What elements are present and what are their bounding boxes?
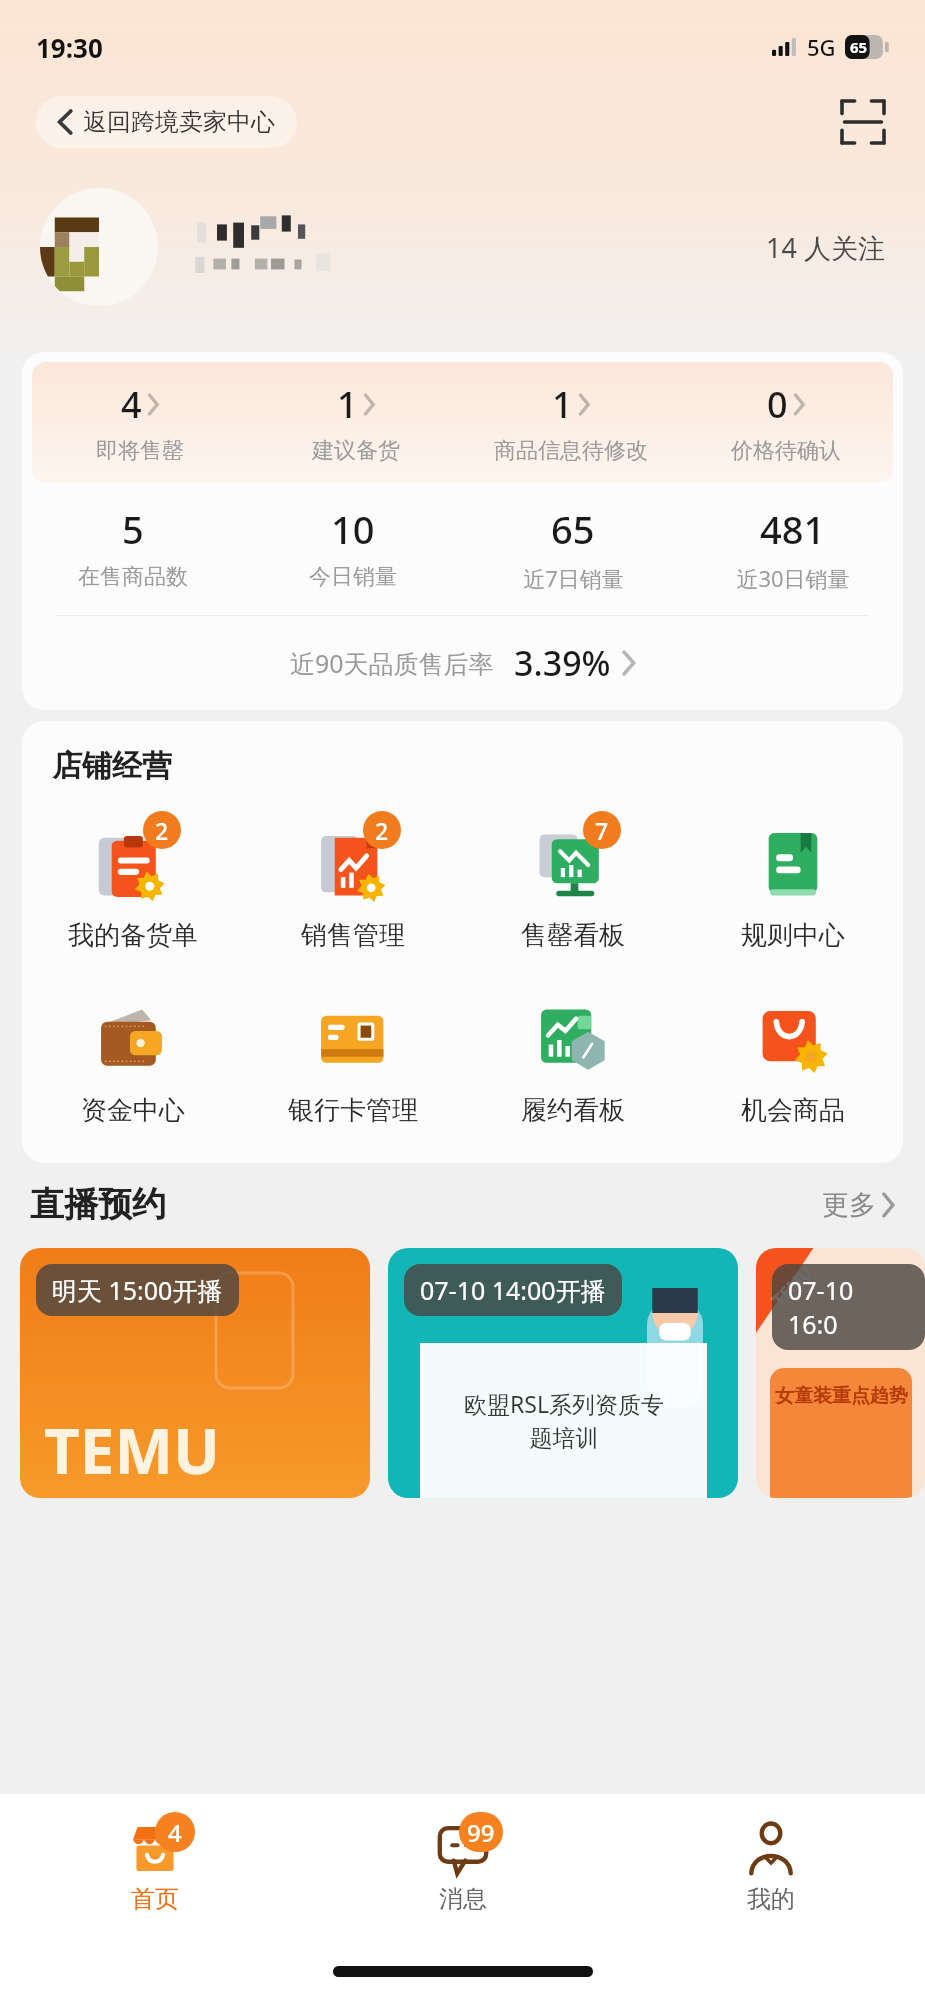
button[interactable]: 2	[22, 811, 243, 952]
staticText: 1	[552, 380, 573, 429]
button[interactable]: 99	[309, 1794, 617, 1914]
staticText: 首页	[131, 1884, 179, 1914]
button[interactable]: 履约看板	[463, 986, 683, 1127]
button[interactable]: 明天 15:00开播	[20, 1248, 370, 1498]
button[interactable]: 更多	[822, 1188, 895, 1222]
button[interactable]: 4	[0, 1794, 309, 1914]
button[interactable]: Scan QR code	[837, 96, 889, 148]
staticText: 5G	[807, 32, 836, 62]
button[interactable]: 规则中心	[683, 811, 903, 952]
staticText: 我的	[747, 1884, 795, 1914]
button[interactable]: 0	[678, 380, 893, 465]
staticText: 481	[760, 503, 826, 555]
staticText: 近30日销量	[736, 563, 850, 593]
staticText: 我的备货单	[68, 919, 198, 952]
staticText: 机会商品	[741, 1094, 845, 1127]
button[interactable]: 机会商品	[683, 986, 903, 1127]
staticText: 直播预约	[30, 1183, 166, 1226]
staticText: 价格待确认	[731, 437, 841, 465]
staticText: 资金中心	[81, 1094, 185, 1127]
staticText: 4	[168, 1816, 182, 1849]
staticText: 今日销量	[309, 563, 397, 591]
button[interactable]: TEMU	[756, 1248, 925, 1498]
button[interactable]: 1	[463, 380, 678, 465]
staticText: 10	[331, 503, 375, 555]
staticText: 售罄看板	[521, 919, 625, 952]
staticText: 店铺经营	[52, 747, 172, 785]
button[interactable]: 7	[463, 811, 683, 952]
staticText: 2	[375, 815, 389, 846]
staticText: 返回跨境卖家中心	[83, 107, 275, 137]
button[interactable]: 65	[463, 503, 683, 593]
staticText: 65	[551, 503, 595, 555]
staticText: 4	[121, 380, 142, 429]
staticText: 欧盟RSL系列资质专 题培训	[464, 1388, 664, 1453]
staticText: 近90天品质售后率	[290, 646, 494, 680]
staticText: TEMU	[44, 1408, 220, 1492]
staticText: 销售管理	[301, 919, 405, 952]
staticText: 5	[122, 503, 144, 555]
staticText: 0	[767, 380, 788, 429]
button[interactable]: 近90天品质售后率	[22, 616, 903, 710]
button[interactable]: 5	[22, 503, 243, 591]
staticText: 65	[850, 37, 868, 57]
staticText: 2	[155, 815, 169, 846]
staticText: TEMU	[767, 1260, 818, 1311]
button[interactable]: 2	[243, 811, 463, 952]
staticText: 近7日销量	[523, 563, 624, 593]
staticText: 明天 15:00开播	[52, 1273, 223, 1307]
button[interactable]: 481	[683, 503, 903, 593]
button[interactable]: 我的	[617, 1794, 925, 1914]
staticText: 99	[467, 1816, 495, 1849]
staticText: 7	[595, 815, 609, 846]
staticText: 更多	[822, 1188, 876, 1222]
staticText: 商品信息待修改	[494, 437, 648, 465]
staticText: 履约看板	[521, 1094, 625, 1127]
staticText: 07-10 14:00开播	[420, 1273, 606, 1307]
button[interactable]: 欧盟RSL系列资质专 题培训	[388, 1248, 738, 1498]
button[interactable]: 银行卡管理	[243, 986, 463, 1127]
staticText: 14 人关注	[766, 229, 885, 266]
staticText: 19:30	[36, 30, 103, 65]
button[interactable]: 4	[32, 380, 248, 465]
staticText: 银行卡管理	[288, 1094, 418, 1127]
staticText: 在售商品数	[78, 563, 188, 591]
staticText: 即将售罄	[96, 437, 184, 465]
staticText: 3.39%	[514, 640, 611, 686]
staticText: 消息	[439, 1884, 487, 1914]
button[interactable]: 10	[243, 503, 463, 591]
staticText: 07-10 16:0	[788, 1273, 909, 1341]
staticText: 女童装重点趋势	[775, 1384, 908, 1408]
staticText: 1	[337, 380, 358, 429]
staticText: 建议备货	[312, 437, 400, 465]
button[interactable]: 返回跨境卖家中心	[36, 96, 297, 148]
button[interactable]: 资金中心	[22, 986, 243, 1127]
staticText: 规则中心	[741, 919, 845, 952]
button[interactable]: 1	[248, 380, 463, 465]
